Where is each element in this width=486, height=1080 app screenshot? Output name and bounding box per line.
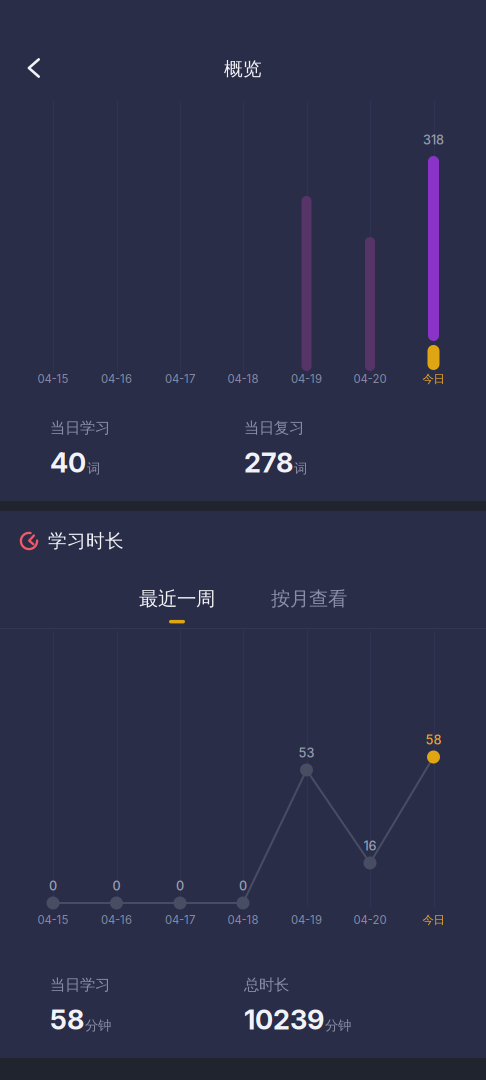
staticText: 04-20 xyxy=(353,372,386,386)
staticText: 0 xyxy=(176,878,184,894)
button[interactable]: Back xyxy=(10,44,58,92)
staticText: 04-18 xyxy=(227,913,258,927)
staticText: 318 xyxy=(423,132,444,148)
staticText: 分钟 xyxy=(325,1017,351,1034)
staticText: 0 xyxy=(239,878,247,894)
staticText: 10239 xyxy=(244,1003,324,1036)
button[interactable]: 最近一周 xyxy=(117,579,237,631)
staticText: 总时长 xyxy=(244,975,289,995)
staticText: 0 xyxy=(112,878,120,894)
staticText: 04-15 xyxy=(37,372,68,386)
staticText: 词 xyxy=(87,460,100,477)
staticText: 概览 xyxy=(224,57,262,81)
staticText: 04-19 xyxy=(291,913,322,927)
staticText: 04-16 xyxy=(101,372,132,386)
staticText: 04-15 xyxy=(37,913,68,927)
staticText: 58 xyxy=(425,732,441,748)
staticText: 学习时长 xyxy=(48,529,124,553)
staticText: 当日学习 xyxy=(50,975,110,995)
staticText: 今日 xyxy=(422,913,444,927)
staticText: 53 xyxy=(298,745,314,761)
staticText: 04-16 xyxy=(101,913,132,927)
staticText: 278 xyxy=(244,446,293,479)
staticText: 0 xyxy=(49,878,57,894)
staticText: 04-18 xyxy=(227,372,258,386)
staticText: 分钟 xyxy=(85,1017,111,1034)
staticText: 当日学习 xyxy=(50,418,110,438)
button[interactable]: 按月查看 xyxy=(249,579,369,631)
staticText: 今日 xyxy=(422,372,444,386)
staticText: 按月查看 xyxy=(271,587,347,611)
staticText: 58 xyxy=(50,1003,84,1036)
staticText: 最近一周 xyxy=(139,587,215,611)
staticText: 04-19 xyxy=(291,372,322,386)
staticText: 04-17 xyxy=(165,372,195,386)
staticText: 词 xyxy=(294,460,307,477)
staticText: 04-17 xyxy=(165,913,195,927)
staticText: 当日复习 xyxy=(244,418,304,438)
staticText: 04-20 xyxy=(353,913,386,927)
staticText: 40 xyxy=(50,446,86,479)
staticText: 16 xyxy=(363,838,376,854)
